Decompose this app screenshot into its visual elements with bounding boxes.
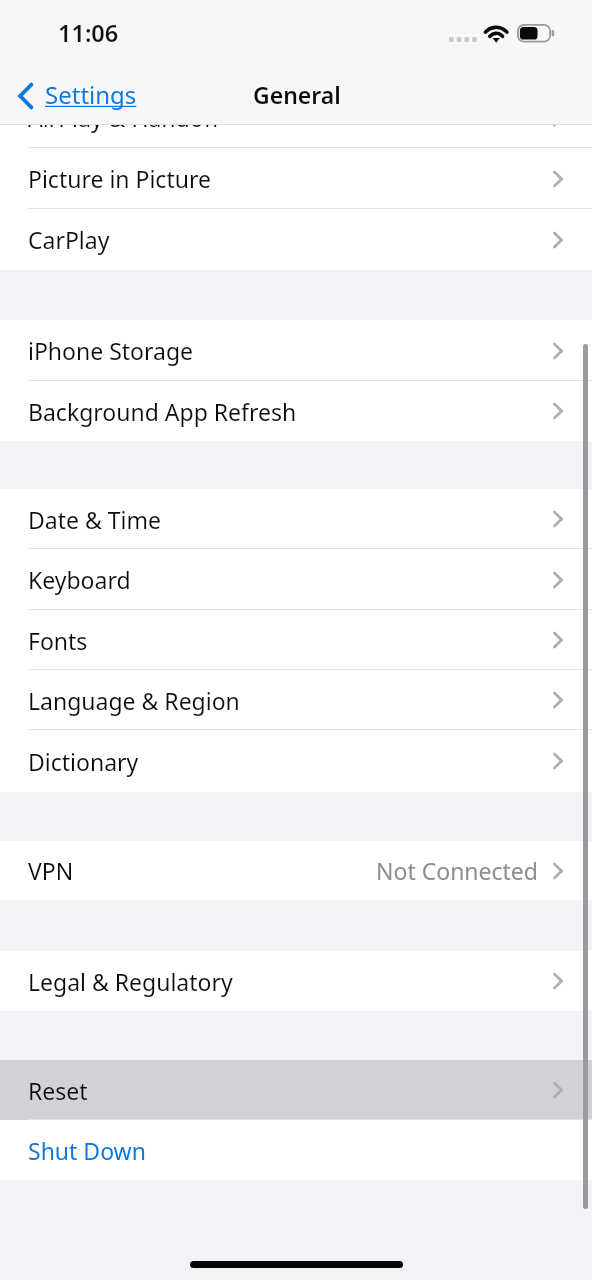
- button[interactable]: Legal & Regulatory: [0, 951, 592, 1011]
- button[interactable]: AirPlay & Handoff: [0, 87, 592, 148]
- button[interactable]: VPN: [0, 841, 592, 900]
- button[interactable]: Background App Refresh: [0, 381, 592, 441]
- other: Battery: [517, 24, 555, 43]
- staticText: Settings: [45, 78, 137, 111]
- staticText: Language & Region: [28, 685, 240, 716]
- button[interactable]: Picture in Picture: [0, 148, 592, 209]
- button[interactable]: Keyboard: [0, 549, 592, 610]
- staticText: AirPlay & Handoff: [28, 102, 220, 133]
- staticText: Picture in Picture: [28, 163, 211, 194]
- button[interactable]: Language & Region: [0, 670, 592, 730]
- button[interactable]: Shut Down: [0, 1120, 592, 1180]
- staticText: Date & Time: [28, 504, 161, 535]
- button[interactable]: CarPlay: [0, 209, 592, 270]
- staticText: General: [253, 79, 341, 110]
- staticText: Background App Refresh: [28, 396, 297, 427]
- staticText: CarPlay: [28, 224, 110, 255]
- staticText: Legal & Regulatory: [28, 966, 233, 997]
- staticText: Dictionary: [28, 746, 139, 777]
- staticText: Reset: [28, 1075, 88, 1106]
- staticText: Shut Down: [28, 1135, 146, 1166]
- staticText: 11:06: [58, 17, 119, 49]
- staticText: VPN: [28, 855, 74, 886]
- staticText: Keyboard: [28, 564, 131, 595]
- button[interactable]: Date & Time: [0, 489, 592, 549]
- staticText: Not Connected: [376, 855, 538, 886]
- staticText: Fonts: [28, 625, 88, 656]
- button[interactable]: Fonts: [0, 610, 592, 670]
- button[interactable]: Settings: [12, 80, 137, 113]
- other: Wi-Fi: [485, 24, 508, 42]
- staticText: iPhone Storage: [28, 335, 194, 366]
- button[interactable]: Dictionary: [0, 730, 592, 792]
- button[interactable]: Reset: [0, 1060, 592, 1120]
- button[interactable]: iPhone Storage: [0, 320, 592, 381]
